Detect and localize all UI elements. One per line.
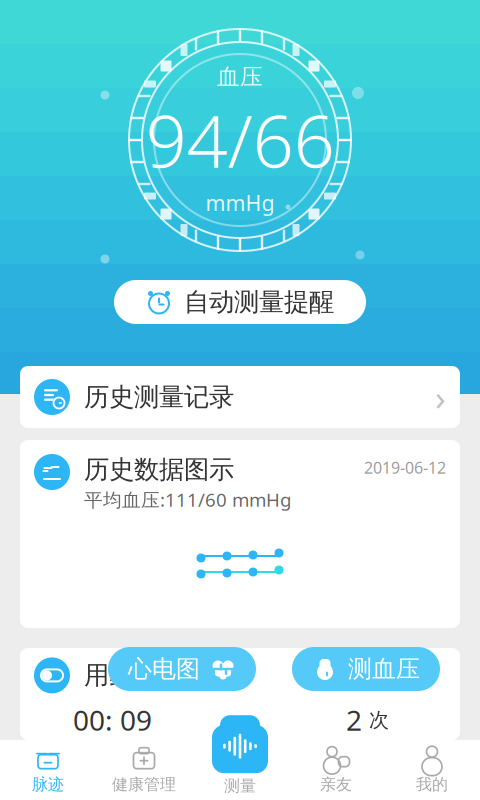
staticText: 2019-06-12 (364, 457, 446, 478)
staticText: 用药 (84, 660, 134, 691)
staticText: › (435, 374, 446, 420)
staticText: 2 (346, 701, 362, 739)
staticText: 血压 (217, 63, 263, 91)
staticText: 历史测量记录 (84, 381, 234, 412)
button[interactable]: 测量 (210, 730, 270, 800)
staticText: 测量 (224, 776, 256, 796)
staticText: 心电图 (128, 654, 200, 684)
staticText: 次 (369, 708, 389, 732)
staticText: 平均血压:111/60 mmHg (84, 487, 291, 512)
button[interactable]: 脉迹 (0, 740, 96, 800)
button[interactable]: 我的 (384, 740, 480, 800)
staticText: 历史数据图示 (84, 454, 234, 485)
staticText: 脉迹 (32, 775, 64, 794)
button[interactable]: 心电图 (108, 647, 256, 691)
staticText: 我的 (416, 775, 448, 794)
staticText: 00: 09 (73, 701, 152, 739)
staticText: mmHg (205, 189, 274, 217)
button[interactable]: 历史数据图示 (20, 440, 460, 628)
staticText: 健康管理 (112, 775, 176, 794)
staticText: 亲友 (320, 775, 352, 794)
button[interactable]: 健康管理 (96, 740, 192, 800)
button[interactable]: 自动测量提醒 (114, 280, 366, 324)
staticText: 94/66 (145, 92, 334, 187)
staticText: 自动测量提醒 (184, 286, 334, 317)
button[interactable]: 亲友 (288, 740, 384, 800)
button[interactable]: 测血压 (292, 647, 440, 691)
staticText: 测血压 (348, 654, 420, 684)
button[interactable]: 历史测量记录 (20, 366, 460, 428)
